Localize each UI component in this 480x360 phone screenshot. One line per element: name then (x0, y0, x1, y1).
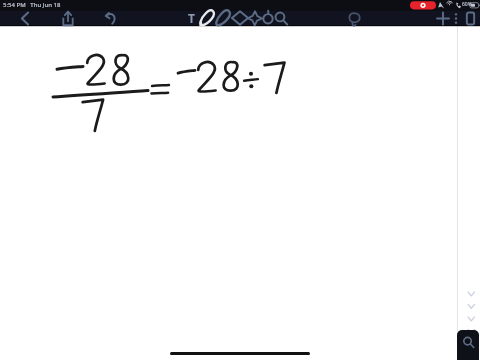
button[interactable]: Eraser (232, 10, 248, 26)
staticText: 5:54 PM Thu Jun 18 (3, 1, 61, 9)
button[interactable]: Text tool (184, 10, 200, 26)
button[interactable]: More options (449, 11, 463, 26)
button[interactable]: Highlighter (215, 10, 231, 26)
button[interactable]: Page navigator (457, 330, 479, 360)
staticText: T (188, 10, 195, 26)
button[interactable]: Pages (463, 11, 478, 26)
button[interactable]: Shapes (247, 10, 263, 26)
button[interactable]: Undo (103, 11, 119, 26)
staticText: 60% (462, 1, 472, 8)
button[interactable]: Add page (435, 11, 451, 26)
button[interactable]: Select (347, 11, 363, 26)
button[interactable]: Back (17, 11, 33, 26)
button[interactable]: Share (60, 11, 76, 26)
button[interactable]: Zoom (273, 10, 289, 26)
button[interactable]: Lasso (260, 10, 276, 26)
button[interactable]: Pen (199, 10, 215, 26)
